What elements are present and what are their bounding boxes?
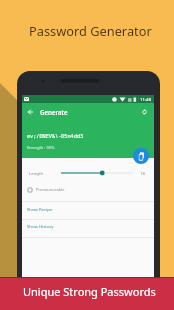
staticText: Unique Strong Passwords (23, 284, 156, 299)
staticText: 18 (140, 170, 145, 176)
staticText: Password Generator (29, 22, 152, 39)
staticText: Show Recipe (27, 206, 53, 212)
staticText: Pronounceable (36, 187, 65, 192)
button[interactable]: Pronounceable (22, 183, 154, 196)
staticText: ev;/DNEV&\-D5n4dd3 (27, 132, 84, 139)
staticText: 11:48 (140, 96, 151, 102)
button[interactable]: Back (25, 106, 36, 117)
button[interactable]: Show Recipe (22, 201, 154, 219)
staticText: Length (29, 170, 44, 176)
button[interactable]: Show History (22, 219, 154, 237)
staticText: Show History (27, 223, 54, 229)
staticText: Strength : 90% (27, 145, 55, 150)
button[interactable]: Refresh (138, 106, 150, 118)
button[interactable]: Copy password (133, 148, 149, 164)
staticText: Generate (40, 108, 68, 116)
